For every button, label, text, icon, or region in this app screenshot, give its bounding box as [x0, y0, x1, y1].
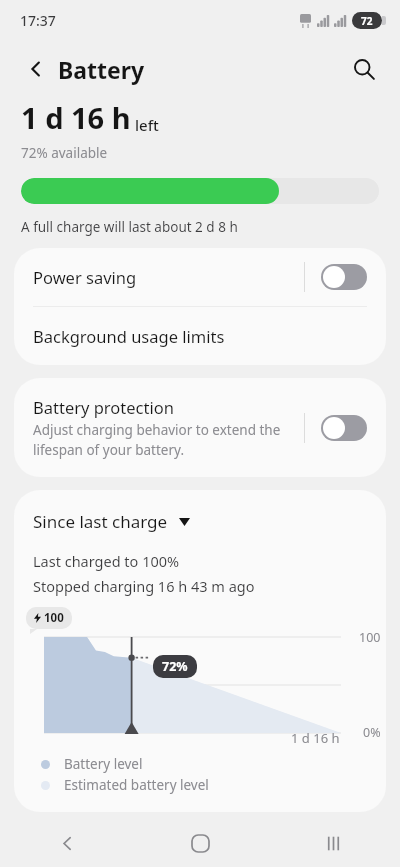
- staticText: 100: [44, 610, 64, 626]
- button[interactable]: Back: [14, 47, 58, 91]
- staticText: 72: [361, 14, 373, 28]
- button[interactable]: Background usage limits: [14, 307, 386, 365]
- staticText: Power saving: [33, 266, 304, 288]
- staticText: Estimated battery level: [64, 776, 209, 794]
- staticText: 17:37: [20, 11, 56, 30]
- button[interactable]: Battery protection: [14, 378, 386, 477]
- staticText: left: [135, 115, 159, 135]
- staticText: Background usage limits: [33, 325, 225, 347]
- staticText: 72%: [162, 658, 188, 675]
- staticText: Adjust charging behavior to extend the l…: [33, 421, 294, 459]
- staticText: A full charge will last about 2 d 8 h: [21, 218, 238, 236]
- staticText: Last charged to 100%: [33, 551, 180, 571]
- button[interactable]: Since last charge: [14, 507, 209, 536]
- button[interactable]: Back: [0, 819, 134, 867]
- staticText: Since last charge: [33, 510, 168, 533]
- staticText: Battery: [58, 54, 145, 85]
- staticText: 0%: [363, 724, 381, 741]
- staticText: 100: [359, 629, 381, 646]
- button[interactable]: Power saving: [14, 248, 386, 306]
- button[interactable]: Home: [134, 819, 267, 867]
- staticText: 1 d 16 h: [291, 729, 340, 747]
- staticText: Stopped charging 16 h 43 m ago: [33, 576, 255, 596]
- staticText: Battery protection: [33, 396, 174, 418]
- staticText: 1 d 16 h: [21, 98, 131, 137]
- button[interactable]: Recents: [267, 819, 400, 867]
- button[interactable]: Toggle off: [321, 264, 367, 290]
- button[interactable]: Search: [342, 47, 386, 91]
- button[interactable]: Toggle off: [321, 415, 367, 441]
- staticText: 72% available: [21, 144, 108, 162]
- staticText: Battery level: [64, 755, 143, 773]
